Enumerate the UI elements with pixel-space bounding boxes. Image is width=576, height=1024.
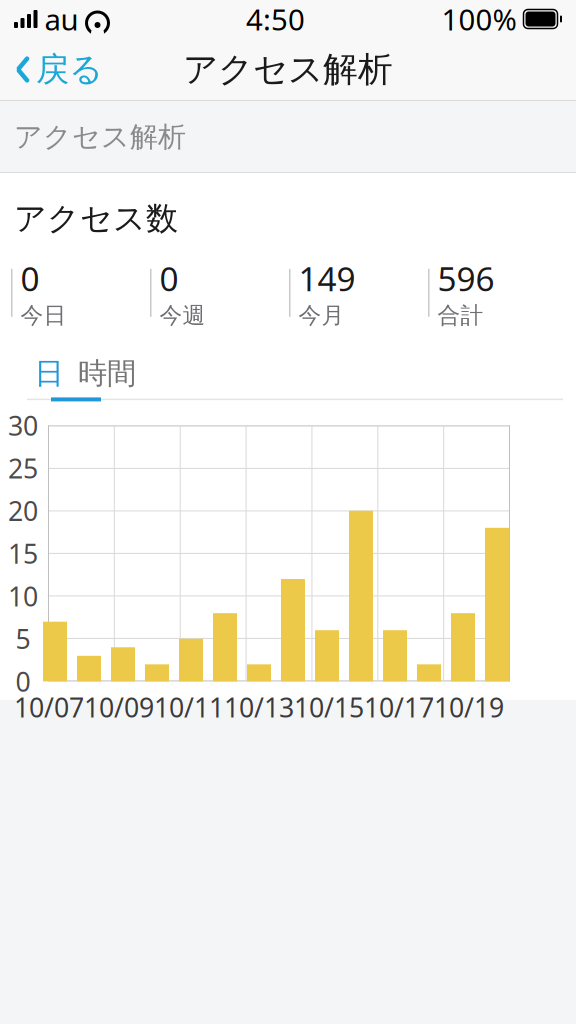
staticText: 20 xyxy=(8,493,38,528)
staticText: 今日 xyxy=(20,302,66,329)
staticText: 596 xyxy=(437,256,494,301)
staticText: 0 xyxy=(159,256,178,301)
staticText: 100% xyxy=(441,0,516,38)
staticText: 0 xyxy=(20,256,39,301)
staticText: 30 xyxy=(8,408,38,443)
button[interactable]: 戻る xyxy=(0,41,103,98)
staticText: アクセス解析 xyxy=(14,120,186,154)
staticText: 日 xyxy=(34,355,63,391)
staticText: 今週 xyxy=(159,302,205,329)
staticText: 今月 xyxy=(298,302,344,329)
staticText: アクセス解析 xyxy=(183,48,393,91)
staticText: 10/15 xyxy=(294,689,364,725)
staticText: 25 xyxy=(8,450,38,486)
staticText: 10/09 xyxy=(84,689,154,725)
staticText: 合計 xyxy=(437,302,483,329)
staticText: 10 xyxy=(8,578,38,614)
button[interactable]: 日 xyxy=(24,355,74,391)
staticText: アクセス数 xyxy=(14,199,178,238)
staticText: 10/13 xyxy=(224,689,294,725)
staticText: 15 xyxy=(8,536,38,571)
staticText: 5 xyxy=(15,621,30,656)
staticText: 10/17 xyxy=(364,689,434,725)
staticText: 10/19 xyxy=(434,689,504,725)
staticText: 149 xyxy=(298,256,355,301)
button[interactable]: 時間 xyxy=(74,355,140,391)
staticText: 4:50 xyxy=(246,0,305,38)
staticText: au xyxy=(44,0,78,38)
staticText: 時間 xyxy=(78,355,136,391)
staticText: 10/11 xyxy=(154,689,224,725)
staticText: 戻る xyxy=(36,49,103,90)
staticText: 10/07 xyxy=(14,689,84,725)
staticText: 0 xyxy=(15,664,30,699)
